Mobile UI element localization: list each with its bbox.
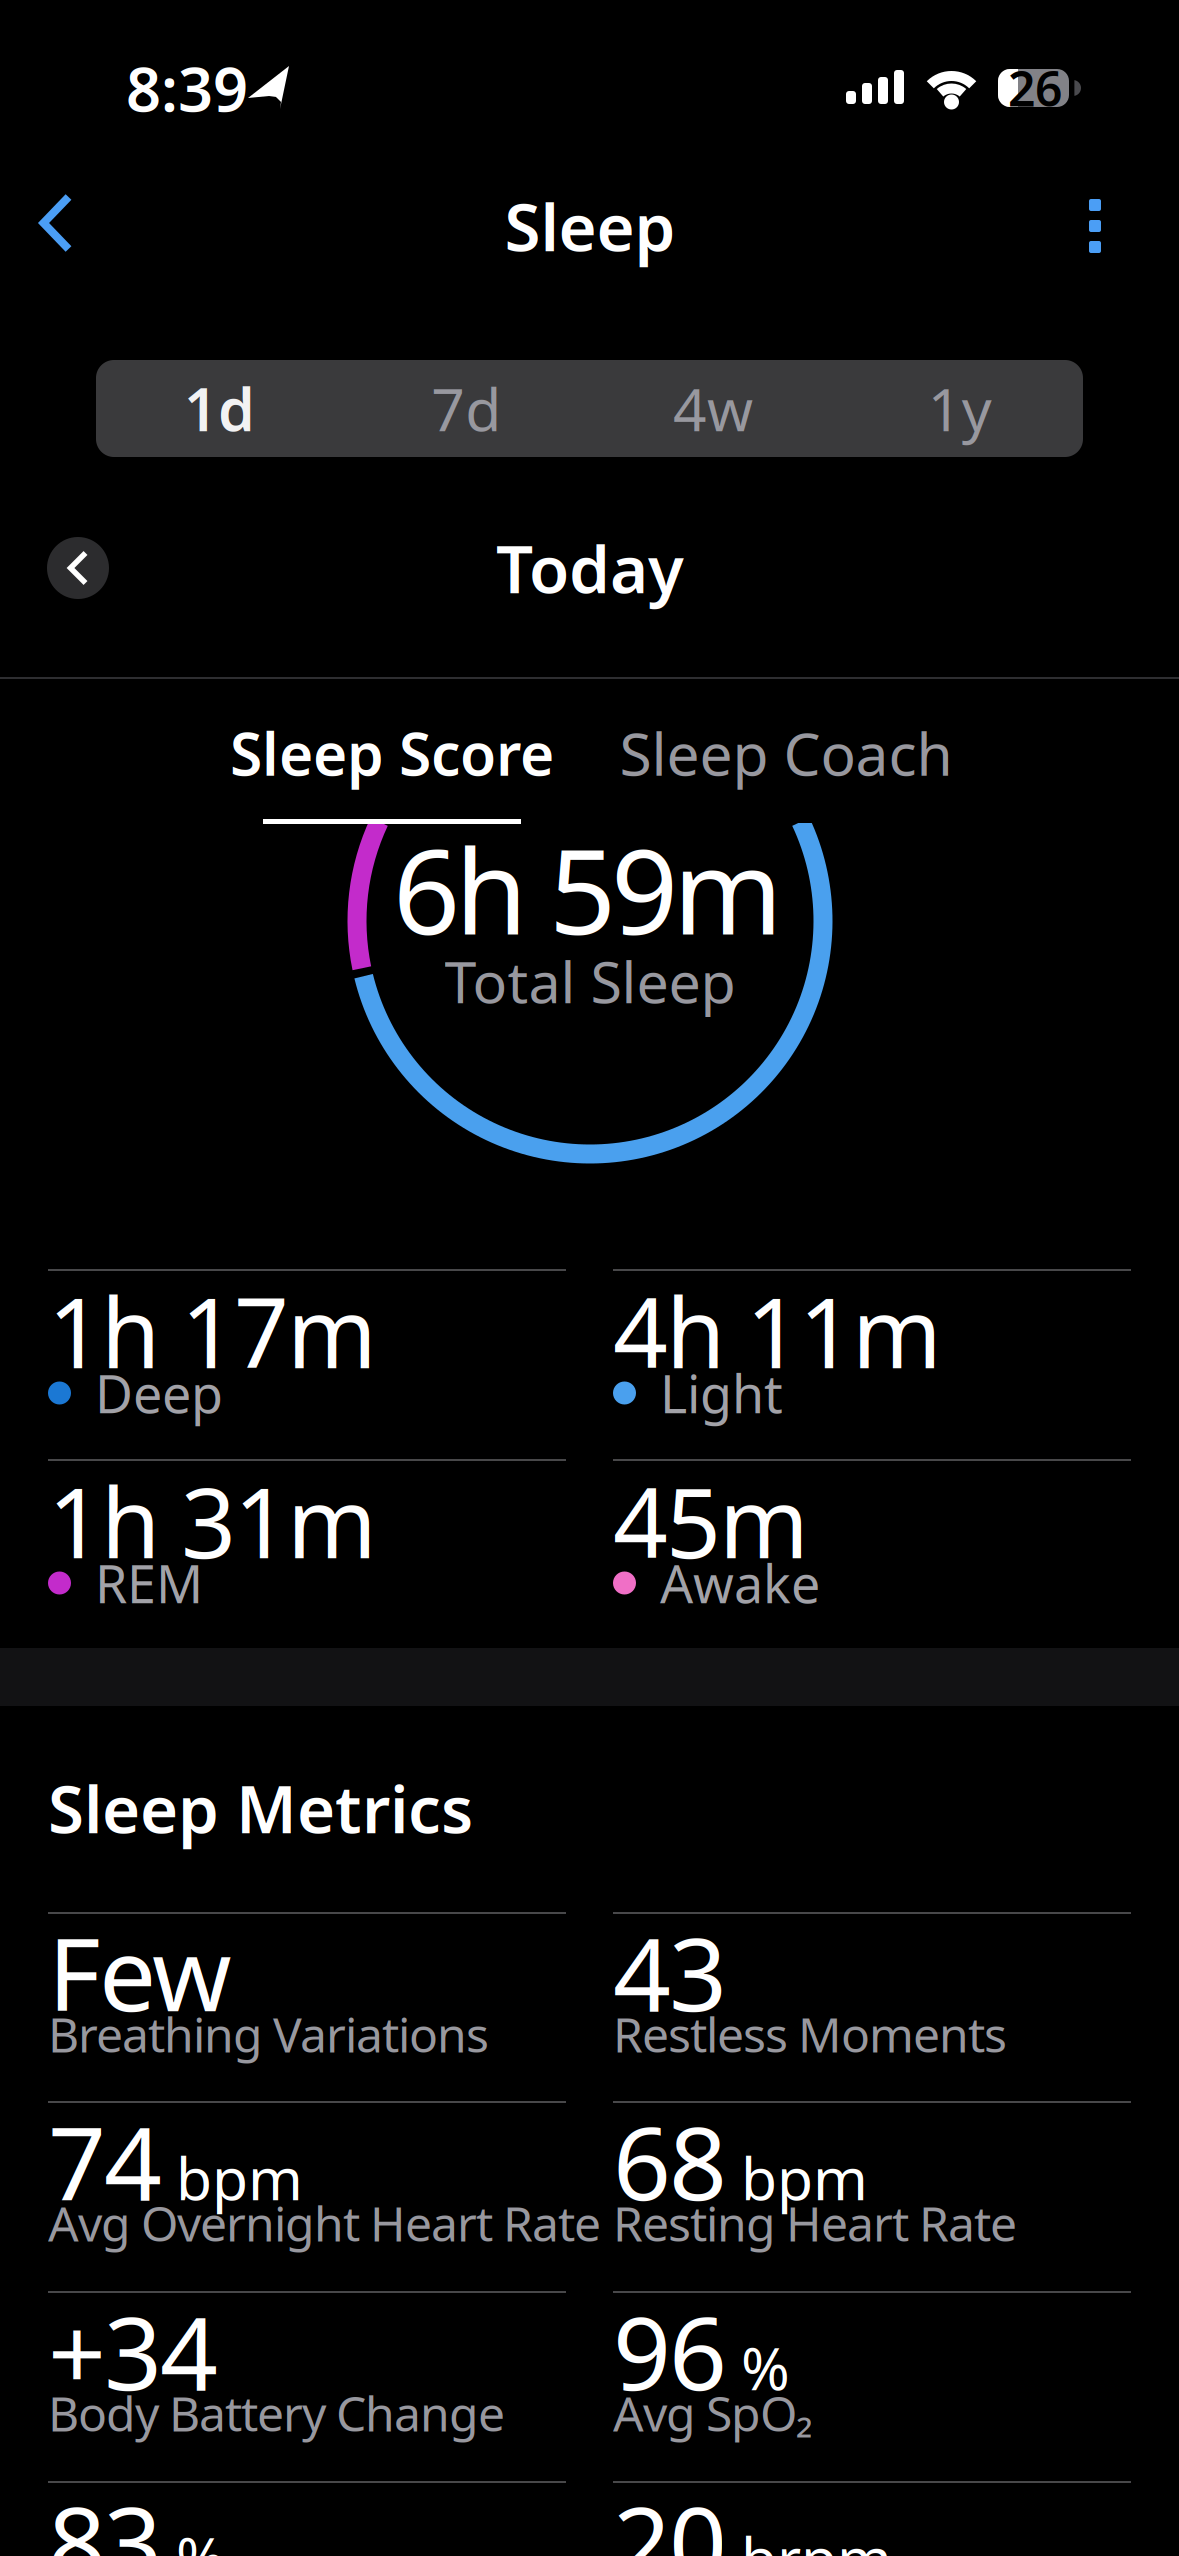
staticText: Light <box>660 1358 783 1428</box>
staticText: Breathing Variations <box>48 2002 489 2066</box>
staticText: 7d <box>431 369 501 447</box>
staticText: 96 <box>613 2284 727 2418</box>
staticText: Restless Moments <box>613 2002 1007 2066</box>
staticText: 68 <box>613 2094 727 2228</box>
staticText: Sleep Score <box>230 714 554 792</box>
staticText: 1y <box>928 369 992 447</box>
staticText: 74 <box>48 2094 162 2228</box>
staticText: 1h 17m <box>48 1267 377 1395</box>
staticText: 83 <box>48 2474 162 2556</box>
button[interactable]: Sleep Score <box>230 714 554 792</box>
button[interactable]: 4w <box>589 360 836 457</box>
button[interactable] <box>1089 199 1101 253</box>
staticText: Today <box>496 525 684 611</box>
staticText: 4w <box>673 369 753 447</box>
button[interactable] <box>43 197 68 249</box>
staticText: 20 <box>613 2474 727 2556</box>
staticText: 45m <box>613 1457 809 1585</box>
staticText: 6h 59m <box>393 811 783 967</box>
button[interactable]: 7d <box>343 360 590 457</box>
staticText: 43 <box>613 1905 727 2039</box>
staticText: brpm <box>741 2519 892 2556</box>
staticText: Deep <box>95 1358 223 1428</box>
staticText: 26 <box>1008 56 1062 120</box>
button[interactable] <box>47 537 109 599</box>
staticText: bpm <box>741 2139 868 2216</box>
staticText: 1d <box>184 369 255 447</box>
staticText: Total Sleep <box>444 943 735 1019</box>
staticText: % <box>741 2329 790 2406</box>
staticText: Sleep Coach <box>619 714 952 792</box>
staticText: Body Battery Change <box>48 2381 505 2445</box>
staticText: 4h 11m <box>613 1267 942 1395</box>
button[interactable]: Sleep Coach <box>619 714 952 792</box>
staticText: REM <box>95 1548 203 1618</box>
staticText: Sleep <box>504 183 675 269</box>
staticText: +34 <box>48 2284 218 2418</box>
staticText: 8:39 <box>126 47 248 129</box>
button[interactable]: 1d <box>96 360 343 457</box>
button[interactable]: 1y <box>836 360 1083 457</box>
staticText: 1h 31m <box>48 1457 377 1585</box>
staticText: Avg SpO₂ <box>613 2381 813 2445</box>
staticText: bpm <box>176 2139 303 2216</box>
staticText: Avg Overnight Heart Rate <box>48 2191 601 2255</box>
staticText: Resting Heart Rate <box>613 2191 1017 2255</box>
staticText: % <box>176 2519 225 2556</box>
staticText: Sleep Metrics <box>48 1765 473 1851</box>
staticText: Few <box>48 1905 232 2039</box>
staticText: Awake <box>660 1548 820 1618</box>
